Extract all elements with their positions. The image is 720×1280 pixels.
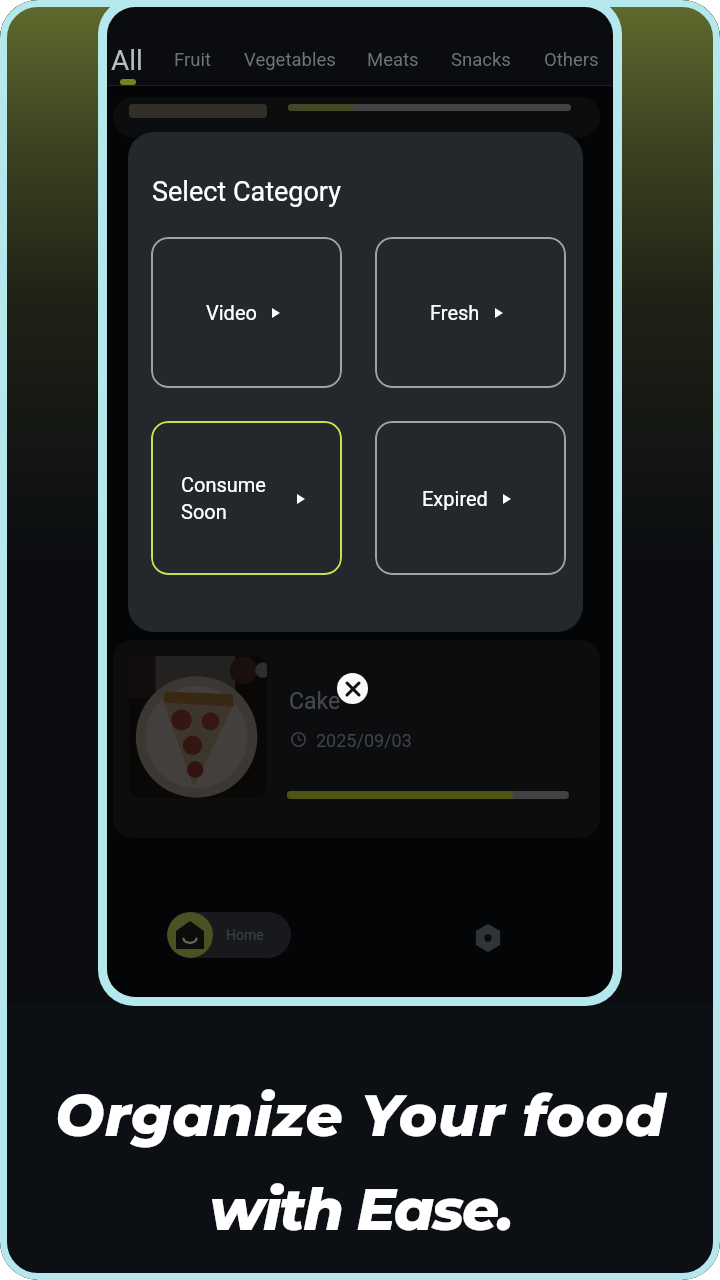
button[interactable]: Vegetables — [244, 49, 336, 71]
staticText: 2025/09/03 — [316, 730, 412, 751]
staticText: Consume Soon — [181, 473, 266, 524]
staticText: Fruit — [174, 49, 212, 71]
staticText: Select Category — [152, 176, 342, 208]
button[interactable]: Cake — [113, 640, 600, 838]
staticText: Organize Your food — [55, 1080, 666, 1151]
staticText: Fresh — [430, 301, 480, 324]
staticText: Snacks — [451, 49, 511, 71]
staticText: Cake — [289, 688, 341, 715]
staticText: Video — [206, 301, 257, 324]
button[interactable]: Close — [337, 673, 368, 704]
button[interactable]: Fresh — [375, 237, 566, 388]
staticText: Expired — [422, 487, 488, 510]
button[interactable]: All — [111, 44, 143, 77]
staticText: Vegetables — [244, 49, 336, 71]
staticText: Others — [544, 49, 599, 71]
button[interactable]: Settings — [468, 918, 508, 958]
button[interactable]: Others — [544, 49, 599, 71]
staticText: with Ease. — [209, 1174, 512, 1245]
button[interactable]: Fruit — [174, 49, 212, 71]
button[interactable]: Expired — [375, 421, 566, 575]
button[interactable]: Consume Soon — [151, 421, 342, 575]
staticText: Meats — [367, 49, 419, 71]
button[interactable]: Home — [167, 912, 291, 958]
staticText: Home — [226, 927, 264, 943]
button[interactable]: Snacks — [451, 49, 511, 71]
button[interactable]: Meats — [367, 49, 419, 71]
staticText: All — [111, 44, 143, 77]
button[interactable]: Video — [151, 237, 342, 388]
